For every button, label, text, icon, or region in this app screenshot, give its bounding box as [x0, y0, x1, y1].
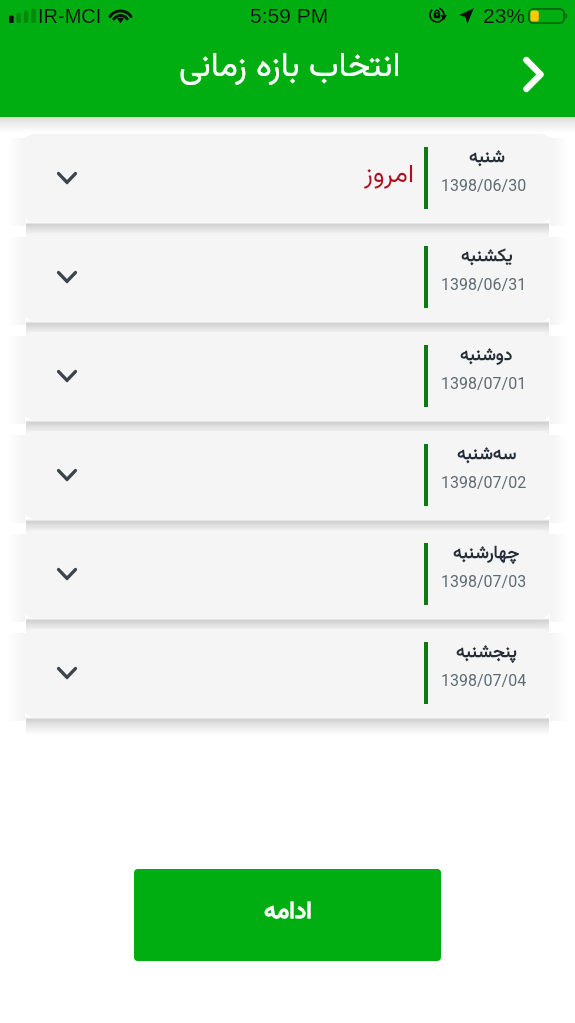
staticText: انتخاب بازه زمانی [179, 41, 401, 94]
staticText: 1398/07/04 [441, 670, 527, 695]
staticText: چهارشنبه [453, 540, 520, 568]
button[interactable]: پنجشنبه [24, 629, 551, 717]
staticText: 5:59 PM [250, 4, 329, 27]
staticText: دوشنبه [460, 342, 513, 370]
button[interactable]: امروز [24, 134, 551, 222]
staticText: 1398/06/30 [441, 175, 527, 200]
button[interactable]: سه‌شنبه [24, 431, 551, 519]
staticText: ادامه [264, 893, 312, 931]
button[interactable]: یکشنبه [24, 233, 551, 321]
staticText: 1398/07/02 [441, 472, 527, 497]
button[interactable]: چهارشنبه [24, 530, 551, 618]
staticText: یکشنبه [461, 243, 513, 271]
staticText: 23% [483, 4, 526, 27]
staticText: IR-MCI [38, 5, 102, 27]
button[interactable]: دوشنبه [24, 332, 551, 420]
staticText: 1398/07/01 [441, 373, 527, 398]
button[interactable]: ادامه [508, 45, 558, 103]
button[interactable]: ادامه [134, 869, 441, 961]
staticText: امروز [364, 155, 415, 196]
staticText: سه‌شنبه [457, 441, 517, 469]
staticText: 1398/07/03 [441, 571, 527, 596]
staticText: پنجشنبه [456, 639, 517, 667]
staticText: 1398/06/31 [441, 274, 527, 299]
staticText: شنبه [469, 144, 505, 172]
